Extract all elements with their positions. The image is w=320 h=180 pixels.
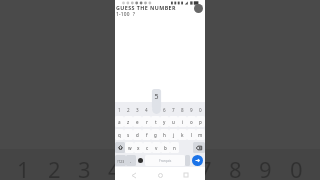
staticText: 9	[190, 107, 193, 113]
staticText: v	[155, 145, 158, 151]
button[interactable]: 6	[160, 105, 169, 115]
staticText: j	[173, 132, 175, 138]
staticText: 2	[127, 107, 130, 113]
button[interactable]: y	[160, 116, 169, 127]
staticText: a	[118, 119, 121, 125]
staticText: 8	[229, 154, 242, 180]
staticText: 7	[199, 154, 212, 180]
staticText: i	[182, 119, 184, 125]
staticText: e	[136, 119, 139, 125]
staticText: 5	[152, 92, 161, 102]
button[interactable]: 2	[124, 105, 133, 115]
staticText: GUESS THE NUMBER	[116, 4, 176, 11]
button[interactable]: Emoji	[136, 154, 145, 167]
staticText: 1-100 ?	[116, 11, 136, 16]
button[interactable]: a	[115, 116, 124, 127]
button[interactable]: n	[170, 142, 179, 153]
staticText: z	[127, 119, 130, 125]
staticText: 2	[48, 154, 61, 180]
staticText: n	[173, 145, 176, 151]
staticText: Français	[159, 159, 172, 163]
button[interactable]: u	[169, 116, 178, 127]
staticText: c	[146, 145, 149, 151]
button[interactable]: r	[142, 116, 151, 127]
staticText: k	[181, 132, 184, 138]
button[interactable]: w	[125, 142, 134, 153]
button[interactable]: Shift	[115, 142, 125, 153]
staticText: ,	[130, 158, 132, 163]
button[interactable]: 3	[133, 105, 142, 115]
button[interactable]: m	[196, 129, 205, 140]
staticText: 8	[181, 107, 184, 113]
button[interactable]: e	[133, 116, 142, 127]
staticText: ?123	[117, 159, 125, 163]
button[interactable]: d	[133, 129, 142, 140]
button[interactable]: c	[143, 142, 152, 153]
button[interactable]: x	[134, 142, 143, 153]
staticText: f	[146, 132, 148, 138]
staticText: o	[190, 119, 193, 125]
button[interactable]: Home	[153, 171, 167, 179]
button[interactable]: Recents	[179, 171, 193, 179]
staticText: s	[127, 132, 130, 138]
button[interactable]: g	[151, 129, 160, 140]
staticText: 4	[145, 107, 148, 113]
button[interactable]: f	[142, 129, 151, 140]
staticText: y	[163, 119, 166, 125]
button[interactable]: 8	[178, 105, 187, 115]
button[interactable]: o	[187, 116, 196, 127]
button[interactable]: Back	[127, 171, 141, 179]
staticText: 1	[17, 154, 30, 180]
staticText: p	[199, 119, 202, 125]
button[interactable]: ,	[126, 155, 136, 166]
button[interactable]: z	[124, 116, 133, 127]
button[interactable]: 4	[142, 105, 151, 115]
staticText: 0	[290, 154, 303, 180]
staticText: 6	[163, 107, 166, 113]
button[interactable]: t	[151, 116, 160, 127]
staticText: d	[136, 132, 139, 138]
staticText: x	[137, 145, 140, 151]
button[interactable]: j	[169, 129, 178, 140]
staticText: u	[172, 119, 175, 125]
staticText: 7	[172, 107, 175, 113]
button[interactable]: i	[178, 116, 187, 127]
button[interactable]: Backspace	[193, 142, 205, 153]
button[interactable]: s	[124, 129, 133, 140]
staticText: g	[154, 132, 157, 138]
staticText: w	[128, 145, 132, 151]
staticText: h	[163, 132, 166, 138]
button[interactable]: 7	[169, 105, 178, 115]
staticText: 3	[78, 154, 91, 180]
button[interactable]: 0	[196, 105, 205, 115]
button[interactable]: b	[161, 142, 170, 153]
button[interactable]: h	[160, 129, 169, 140]
staticText: b	[164, 145, 167, 151]
button[interactable]: l	[187, 129, 196, 140]
button[interactable]: 9	[187, 105, 196, 115]
staticText: r	[146, 119, 148, 125]
staticText: 1	[118, 107, 121, 113]
button[interactable]: q	[115, 129, 124, 140]
staticText: 4	[108, 154, 121, 180]
button[interactable]	[151, 105, 160, 115]
staticText: q	[118, 132, 121, 138]
button[interactable]: Profile	[194, 4, 203, 13]
staticText: 0	[199, 107, 202, 113]
staticText: l	[191, 132, 193, 138]
staticText: 9	[259, 154, 272, 180]
button[interactable]: 1	[115, 105, 124, 115]
staticText: t	[155, 119, 157, 125]
button[interactable]: v	[152, 142, 161, 153]
button[interactable]: k	[178, 129, 187, 140]
staticText: 5	[138, 154, 151, 180]
staticText: 3	[136, 107, 139, 113]
button[interactable]: p	[196, 116, 205, 127]
button[interactable]: ?123	[115, 155, 126, 166]
staticText: 6	[169, 154, 182, 180]
button[interactable]: Send	[192, 155, 203, 166]
staticText: m	[198, 132, 203, 138]
button[interactable]: Français	[145, 155, 185, 166]
